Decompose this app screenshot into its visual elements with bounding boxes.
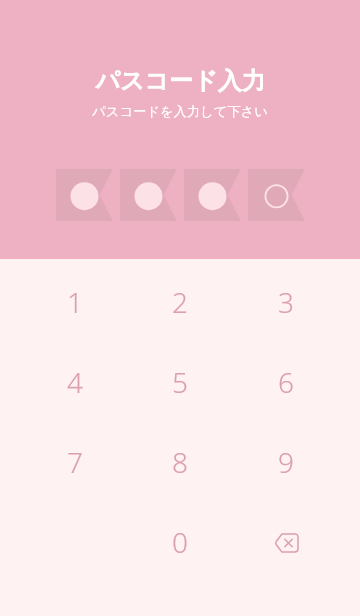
staticText: 4 <box>67 363 83 401</box>
staticText: 0 <box>172 523 188 561</box>
staticText: 7 <box>67 443 83 481</box>
staticText: パスコード入力 <box>95 66 266 96</box>
button[interactable]: Backspace <box>233 502 339 582</box>
staticText: 8 <box>172 443 188 481</box>
staticText: 5 <box>172 363 188 401</box>
staticText: 1 <box>67 283 83 321</box>
button[interactable]: 8 <box>127 422 233 502</box>
button[interactable]: 0 <box>127 502 233 582</box>
staticText: 6 <box>278 363 294 401</box>
staticText: 2 <box>172 283 188 321</box>
button[interactable]: 4 <box>22 342 127 422</box>
staticText: パスコードを入力して下さい <box>92 103 268 120</box>
staticText: 3 <box>278 283 294 321</box>
button[interactable]: 1 <box>22 262 127 342</box>
button[interactable]: 5 <box>127 342 233 422</box>
button[interactable]: 6 <box>233 342 339 422</box>
button[interactable]: 3 <box>233 262 339 342</box>
staticText: 9 <box>278 443 294 481</box>
button[interactable]: 2 <box>127 262 233 342</box>
button[interactable]: 9 <box>233 422 339 502</box>
button[interactable]: 7 <box>22 422 127 502</box>
